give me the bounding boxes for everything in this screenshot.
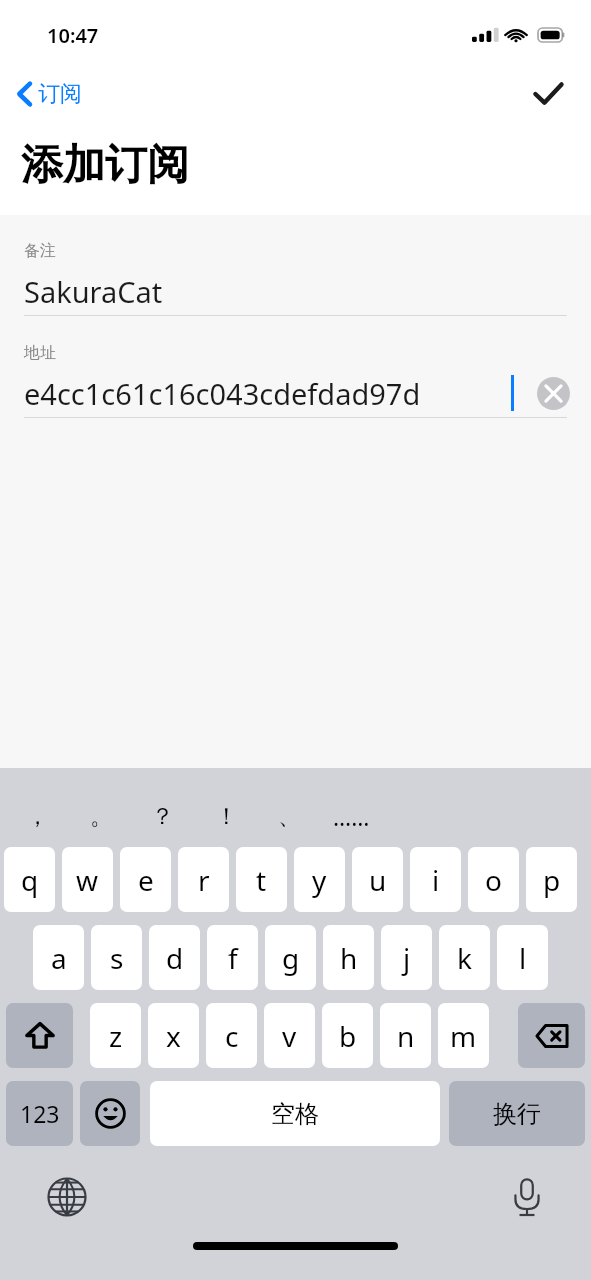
button[interactable]: v: [264, 1003, 315, 1068]
button[interactable]: 换行: [449, 1081, 585, 1146]
staticText: 123: [20, 1098, 60, 1129]
staticText: 添加订阅: [21, 139, 189, 192]
button[interactable]: n: [380, 1003, 431, 1068]
staticText: 换行: [493, 1099, 541, 1129]
staticText: q: [21, 861, 39, 899]
button[interactable]: g: [265, 925, 316, 990]
staticText: k: [457, 939, 472, 977]
staticText: u: [369, 861, 387, 899]
staticText: ！: [215, 802, 238, 831]
staticText: d: [166, 939, 184, 977]
button[interactable]: b: [322, 1003, 373, 1068]
button[interactable]: m: [438, 1003, 489, 1068]
staticText: e4cc1c61c16c043cdefdad97d: [24, 374, 421, 413]
button[interactable]: x: [148, 1003, 199, 1068]
button[interactable]: ，: [8, 790, 66, 842]
staticText: f: [228, 939, 238, 977]
button[interactable]: Shift: [6, 1003, 73, 1068]
button[interactable]: q: [4, 847, 55, 912]
staticText: ？: [151, 802, 174, 831]
staticText: b: [339, 1017, 357, 1055]
button[interactable]: h: [323, 925, 374, 990]
button[interactable]: ！: [197, 790, 255, 842]
button[interactable]: Dictation: [504, 1171, 550, 1223]
button[interactable]: l: [497, 925, 548, 990]
staticText: m: [450, 1017, 477, 1055]
staticText: 、: [278, 802, 301, 831]
button[interactable]: Done: [527, 76, 569, 112]
button[interactable]: c: [206, 1003, 257, 1068]
button[interactable]: d: [149, 925, 200, 990]
staticText: h: [340, 939, 358, 977]
button[interactable]: u: [352, 847, 403, 912]
button[interactable]: ……: [322, 790, 380, 842]
button[interactable]: i: [410, 847, 461, 912]
button[interactable]: z: [90, 1003, 141, 1068]
button[interactable]: e: [120, 847, 171, 912]
button[interactable]: 空格: [150, 1081, 440, 1146]
button[interactable]: 。: [72, 790, 130, 842]
button[interactable]: Clear text: [537, 377, 570, 410]
staticText: 地址: [24, 343, 56, 363]
staticText: i: [432, 861, 440, 899]
button[interactable]: j: [381, 925, 432, 990]
staticText: z: [109, 1017, 123, 1055]
staticText: ……: [333, 801, 370, 832]
staticText: g: [282, 939, 300, 977]
staticText: 订阅: [38, 80, 82, 108]
button[interactable]: y: [294, 847, 345, 912]
button[interactable]: 地址: [0, 343, 591, 418]
button[interactable]: k: [439, 925, 490, 990]
staticText: y: [312, 861, 327, 899]
staticText: x: [166, 1017, 181, 1055]
staticText: n: [397, 1017, 415, 1055]
staticText: 10:47: [47, 22, 99, 49]
staticText: r: [198, 861, 210, 899]
staticText: l: [519, 939, 527, 977]
staticText: e: [138, 861, 154, 899]
button[interactable]: ？: [133, 790, 191, 842]
staticText: t: [256, 861, 267, 899]
button[interactable]: w: [62, 847, 113, 912]
button[interactable]: 、: [260, 790, 318, 842]
button[interactable]: Switch keyboard: [41, 1171, 93, 1223]
button[interactable]: 备注: [0, 241, 591, 316]
button[interactable]: Emoji: [80, 1081, 140, 1146]
staticText: SakuraCat: [24, 272, 163, 311]
staticText: a: [51, 939, 67, 977]
button[interactable]: p: [526, 847, 577, 912]
button[interactable]: s: [91, 925, 142, 990]
button[interactable]: 订阅: [12, 74, 88, 114]
staticText: 空格: [271, 1099, 319, 1129]
button[interactable]: o: [468, 847, 519, 912]
staticText: 。: [90, 802, 113, 831]
button[interactable]: t: [236, 847, 287, 912]
button[interactable]: a: [33, 925, 84, 990]
staticText: j: [403, 939, 411, 977]
button[interactable]: 123: [6, 1081, 73, 1146]
staticText: 备注: [24, 241, 56, 261]
staticText: o: [485, 861, 502, 899]
button[interactable]: Backspace: [518, 1003, 585, 1068]
staticText: ，: [26, 802, 49, 831]
staticText: w: [76, 861, 99, 899]
button[interactable]: f: [207, 925, 258, 990]
button[interactable]: r: [178, 847, 229, 912]
staticText: c: [225, 1017, 239, 1055]
staticText: p: [543, 861, 561, 899]
staticText: v: [282, 1017, 297, 1055]
staticText: s: [110, 939, 124, 977]
